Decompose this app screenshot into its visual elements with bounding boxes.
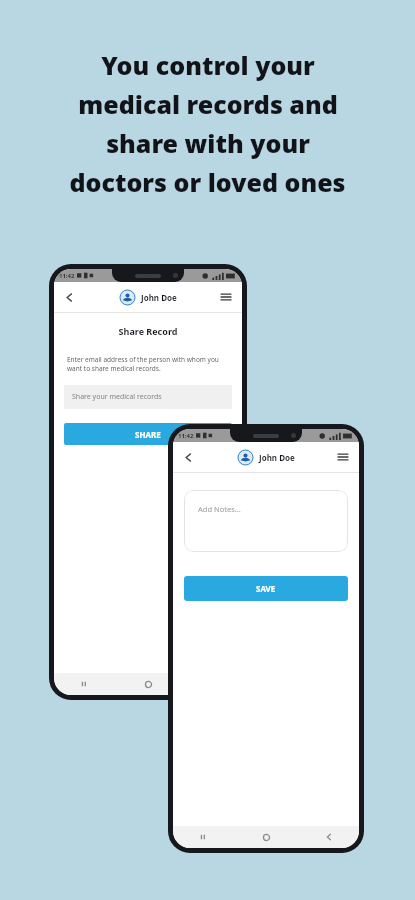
staticText: John Doe — [259, 452, 295, 463]
staticText: share with your — [106, 126, 310, 160]
staticText: Share your medical records — [72, 392, 162, 402]
staticText: Share Record — [54, 325, 242, 337]
staticText: 11:42 — [178, 432, 194, 440]
staticText: SAVE — [256, 583, 276, 594]
button[interactable]: John Doe — [120, 290, 177, 305]
staticText: You control your — [101, 48, 315, 82]
button[interactable]: Home — [144, 680, 153, 689]
button[interactable]: Share your medical records — [64, 385, 232, 409]
button[interactable]: SAVE — [184, 576, 348, 601]
button[interactable]: Recents — [80, 680, 88, 688]
button[interactable]: Back — [325, 833, 333, 841]
button[interactable]: Add Notes... — [184, 490, 348, 552]
button[interactable]: Back — [184, 453, 193, 462]
button[interactable]: Recents — [199, 833, 207, 841]
button[interactable]: Menu — [221, 293, 231, 301]
staticText: Add Notes... — [198, 504, 241, 514]
staticText: SHARE — [135, 429, 161, 440]
button[interactable]: John Doe — [238, 450, 295, 465]
staticText: medical records and — [78, 87, 338, 121]
staticText: Enter email address of the person with w… — [67, 355, 229, 373]
staticText: 11:42 — [59, 272, 75, 280]
button[interactable]: SHARE — [64, 423, 232, 445]
button[interactable]: Menu — [338, 453, 348, 461]
staticText: doctors or loved ones — [69, 165, 346, 199]
button[interactable]: Home — [262, 833, 271, 842]
button[interactable]: Back — [65, 293, 74, 302]
staticText: John Doe — [141, 292, 177, 303]
